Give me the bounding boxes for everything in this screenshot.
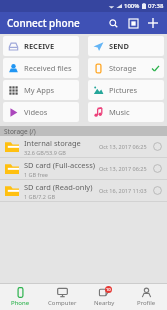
staticText: RECEIVE [24, 41, 55, 51]
button[interactable]: Computer [41, 284, 83, 310]
staticText: Internal storage [24, 138, 81, 148]
button[interactable]: Received files [3, 58, 79, 78]
button[interactable]: RECEIVE [3, 36, 79, 56]
button[interactable]: Search [103, 13, 123, 33]
button[interactable]: Videos [3, 102, 79, 122]
staticText: Music [109, 107, 130, 117]
staticText: Profile [137, 299, 156, 307]
staticText: Oct 13, 2017 06:25 [99, 143, 147, 150]
button[interactable]: Music [88, 102, 164, 122]
button[interactable]: Storage [88, 58, 164, 78]
staticText: Storage (/) [4, 127, 36, 136]
button[interactable]: Phone [0, 284, 41, 310]
button[interactable]: Internal storage [0, 136, 167, 157]
staticText: Nearby [94, 299, 115, 307]
staticText: 32.6 GB/53.9 GB [24, 149, 66, 156]
staticText: SD card (Read-only) [24, 182, 93, 192]
button[interactable]: View mode [123, 13, 143, 33]
staticText: SEND [109, 41, 129, 51]
staticText: SD card (Full-access) [24, 160, 95, 170]
staticText: Connect phone [7, 16, 80, 30]
staticText: 1 GB free [24, 171, 48, 178]
button[interactable]: 10 [83, 284, 125, 310]
staticText: Received files [24, 63, 72, 73]
button[interactable]: Add [143, 13, 163, 33]
staticText: Pictures [109, 85, 138, 95]
staticText: 1 GB/7.2 GB [24, 193, 55, 200]
staticText: Storage [109, 63, 137, 73]
button[interactable]: SD card (Full-access) [0, 158, 167, 179]
staticText: Oct 16, 2017 11:03 [99, 187, 147, 194]
staticText: My Apps [24, 85, 55, 95]
button[interactable]: SD card (Read-only) [0, 180, 167, 201]
staticText: 100% [124, 2, 140, 10]
staticText: Oct 13, 2017 06:25 [99, 165, 147, 172]
button[interactable]: Pictures [88, 80, 164, 100]
button[interactable]: Profile [125, 284, 167, 310]
staticText: 07:38 [148, 2, 164, 10]
button[interactable]: SEND [88, 36, 164, 56]
staticText: Computer [48, 299, 77, 307]
staticText: Phone [11, 299, 30, 307]
staticText: Videos [24, 107, 48, 117]
staticText: 10 [106, 287, 111, 292]
button[interactable]: My Apps [3, 80, 79, 100]
